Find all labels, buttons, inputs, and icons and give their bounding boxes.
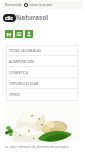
staticText: Naturasol <box>16 13 49 22</box>
staticText: COSMETICA <box>9 70 28 75</box>
staticText: iniciar la sesión <box>29 3 52 7</box>
button[interactable]: iniciar la sesión <box>29 3 52 7</box>
button[interactable]: Usuario <box>24 3 28 7</box>
staticText: Bienvenido <box>5 3 22 7</box>
staticText: La mejor selección de alimentación ecoló… <box>5 145 69 149</box>
button[interactable]: COSMETICA <box>6 67 78 78</box>
button[interactable]: clic <box>3 13 49 22</box>
staticText: clic <box>5 15 14 22</box>
button[interactable]: TODAS LAS MARCAS <box>6 45 78 56</box>
button[interactable]: OTROS <box>6 89 78 100</box>
button[interactable]: ALIMENTACION <box>6 56 78 67</box>
button[interactable]: Cuenta <box>25 30 33 38</box>
button[interactable] <box>4 105 80 142</box>
staticText: ALIMENTACION <box>9 59 34 64</box>
staticText: ORTOMOLECULAR <box>9 81 39 86</box>
staticText: OTROS <box>9 92 21 97</box>
button[interactable]: ORTOMOLECULAR <box>6 78 78 89</box>
button[interactable]: Pedidos <box>15 30 23 38</box>
button[interactable]: Carrito <box>5 30 13 38</box>
staticText: TODAS LAS MARCAS <box>9 48 41 53</box>
